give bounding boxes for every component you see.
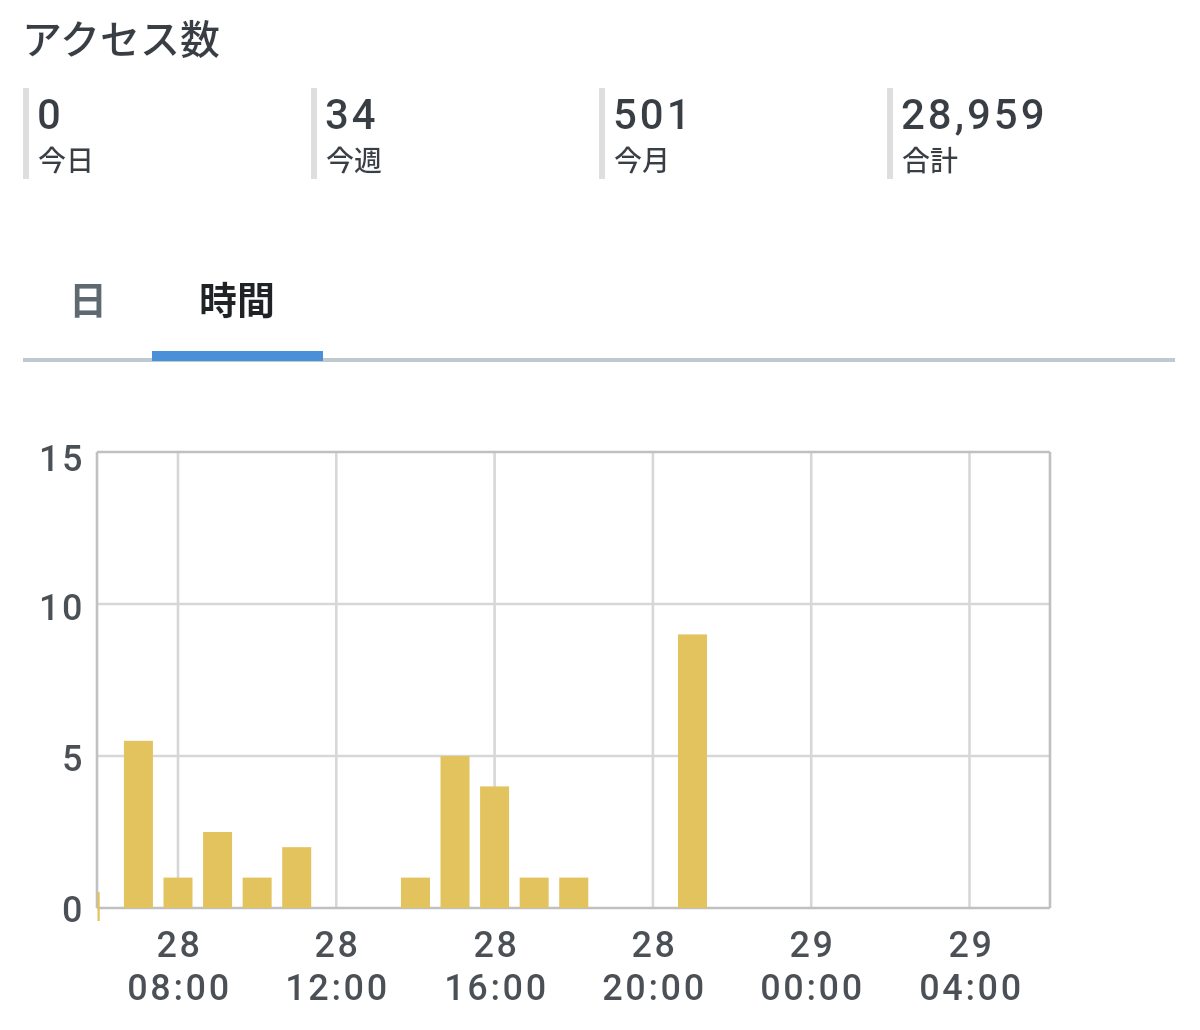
staticText: 5 <box>62 738 86 780</box>
button[interactable]: 501 <box>599 88 887 179</box>
staticText: 今週 <box>326 139 383 180</box>
staticText: 10 <box>39 587 86 629</box>
staticText: 時間 <box>199 270 276 325</box>
staticText: アクセス数 <box>22 8 220 66</box>
staticText: 28 <box>473 924 520 966</box>
staticText: 29 <box>948 924 995 966</box>
staticText: 0 <box>37 90 64 139</box>
staticText: 00:00 <box>760 967 865 1009</box>
button[interactable]: 28,959 <box>887 88 1175 179</box>
staticText: 今月 <box>614 139 671 180</box>
staticText: 04:00 <box>919 967 1024 1009</box>
staticText: 28 <box>631 924 678 966</box>
staticText: 501 <box>613 90 694 139</box>
button[interactable]: 日 <box>12 247 164 347</box>
staticText: 08:00 <box>127 967 232 1009</box>
button[interactable]: 時間 <box>152 247 323 347</box>
button[interactable]: 34 <box>311 88 599 179</box>
staticText: 日 <box>69 270 108 325</box>
button[interactable]: 0 <box>23 88 311 179</box>
staticText: 20:00 <box>602 967 707 1009</box>
staticText: 12:00 <box>285 967 390 1009</box>
staticText: 15 <box>39 438 86 480</box>
staticText: 28,959 <box>901 90 1048 139</box>
staticText: 0 <box>62 889 86 931</box>
staticText: 28 <box>314 924 361 966</box>
staticText: 今日 <box>38 139 95 180</box>
staticText: 34 <box>325 90 379 139</box>
staticText: 合計 <box>902 139 959 180</box>
staticText: 16:00 <box>444 967 549 1009</box>
staticText: 28 <box>156 924 203 966</box>
staticText: 29 <box>789 924 836 966</box>
